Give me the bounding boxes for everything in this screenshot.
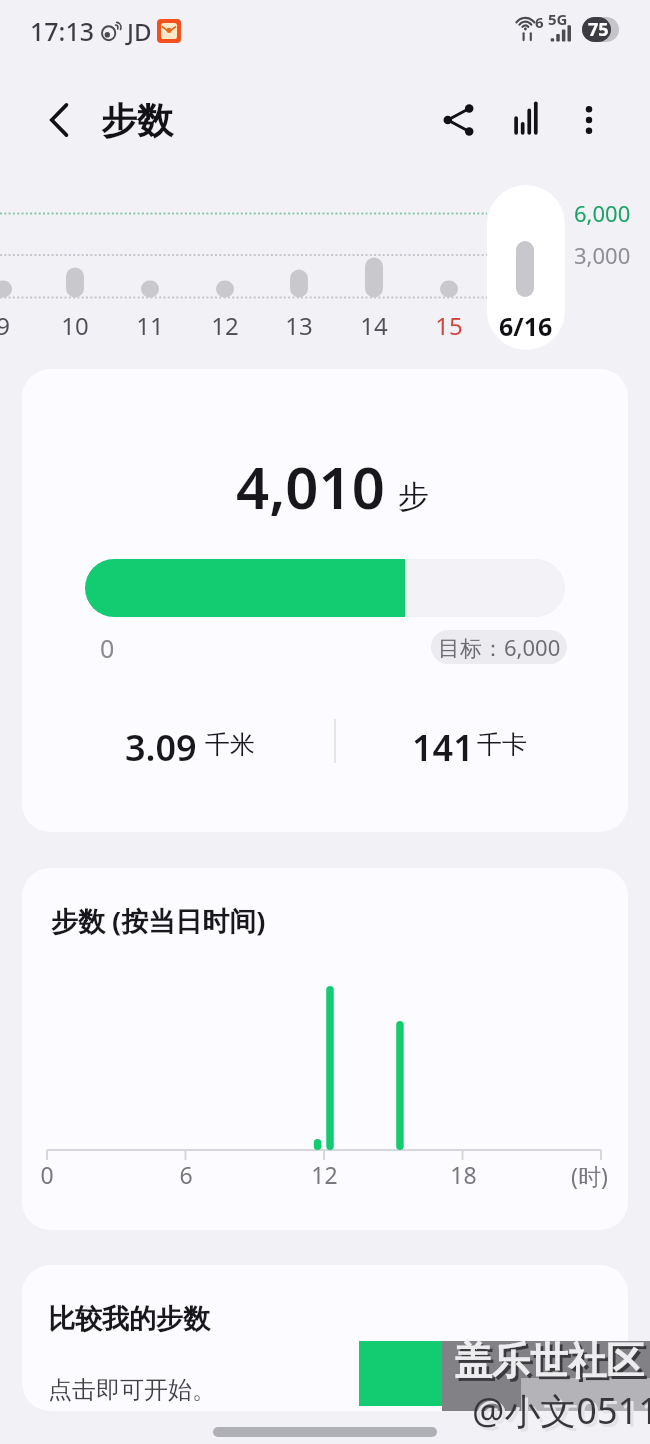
staticText: 11 [136,309,164,342]
button[interactable]: Back [28,88,92,152]
staticText: 步数 (按当日时间) [51,902,266,939]
button[interactable]: 步数 (按当日时间) [22,868,628,1230]
staticText: 6,000 [574,198,631,228]
staticText: 141 [412,723,474,772]
staticText: 75 [588,17,609,42]
staticText: 10 [61,309,89,342]
staticText: 0 [40,1159,54,1190]
staticText: 千卡 [477,729,527,760]
staticText: 盖乐世社区 [457,1340,647,1388]
staticText: 6/16 [499,309,553,343]
staticText: 12 [311,1159,338,1190]
staticText: @小文0511 [475,1389,650,1438]
staticText: 6 [179,1159,193,1190]
button[interactable]: 6/16 [487,185,565,350]
staticText: 3.09 [125,723,197,772]
staticText: 步 [398,477,429,516]
staticText: 15 [435,309,463,342]
staticText: JD [127,15,152,48]
staticText: 13 [285,309,313,342]
button[interactable]: More options [557,88,621,152]
staticText: 3,000 [574,240,631,270]
button[interactable]: Statistics [495,88,559,152]
staticText: 目标：6,000 [438,632,561,662]
staticText: 盖乐世社区 [454,1337,644,1385]
staticText: 12 [211,309,239,342]
staticText: 0 [100,631,115,665]
button[interactable]: 4,010 [22,369,628,832]
button[interactable]: 比较我的步数 [22,1265,628,1411]
staticText: 14 [360,309,388,342]
staticText: 5G [548,9,568,29]
staticText: 9 [0,309,10,342]
button[interactable]: Share [427,88,491,152]
staticText: 6 [535,12,544,32]
staticText: 点击即可开始。 [48,1375,216,1405]
staticText: (时) [571,1160,608,1191]
staticText: @小文0511 [472,1386,650,1435]
staticText: 17:13 [30,14,95,48]
staticText: 比较我的步数 [48,1302,210,1336]
staticText: 18 [450,1159,477,1190]
staticText: 千米 [205,729,255,760]
staticText: 步数 [101,98,173,143]
staticText: 4,010 [236,447,385,526]
